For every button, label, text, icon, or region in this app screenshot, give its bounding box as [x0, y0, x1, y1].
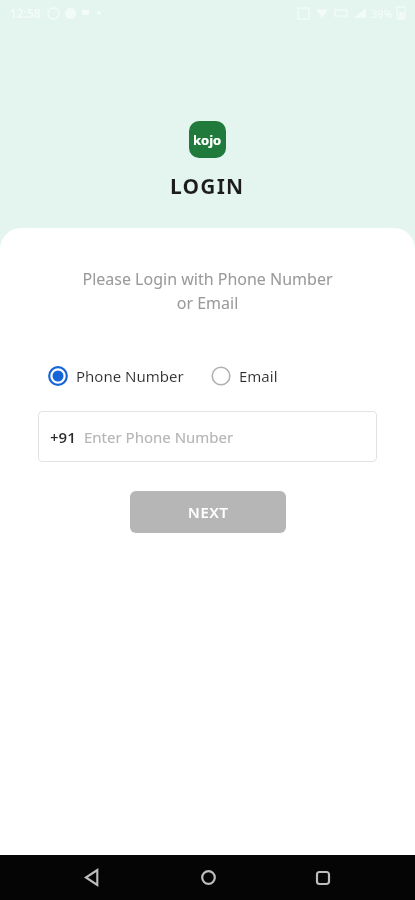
button[interactable]: +91	[38, 411, 377, 462]
staticText: 39%	[371, 6, 393, 21]
staticText: NEXT	[188, 502, 229, 522]
button[interactable]: NEXT	[130, 491, 286, 533]
button[interactable]: Recent apps	[300, 855, 346, 900]
button[interactable]: Phone Number	[46, 362, 186, 390]
button[interactable]: Home	[185, 855, 231, 900]
staticText: Email	[239, 366, 278, 386]
staticText: kojo	[193, 131, 222, 149]
button[interactable]: Email	[209, 362, 280, 390]
staticText: +91	[50, 427, 76, 447]
staticText: 12:58	[10, 5, 41, 21]
staticText: Please Login with Phone Number or Email	[82, 268, 333, 314]
staticText: Enter Phone Number	[84, 427, 234, 447]
staticText: LOGIN	[170, 172, 245, 201]
button[interactable]: Back	[69, 855, 115, 900]
staticText: Phone Number	[76, 366, 184, 386]
